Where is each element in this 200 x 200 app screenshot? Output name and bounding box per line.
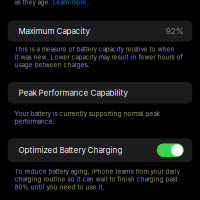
staticText: To reduce battery aging, iPhone learns f…: [14, 168, 179, 175]
staticText: Peak Performance Capability: [18, 88, 127, 98]
staticText: Maximum Capacity: [18, 26, 89, 36]
staticText: charging routine so it can wait to finis…: [14, 176, 177, 183]
staticText: 92%: [166, 26, 184, 36]
staticText: as they age.: [14, 0, 52, 6]
button[interactable]: Peak Performance Capability: [8, 82, 192, 104]
button[interactable]: Optimized Battery Charging: [8, 138, 192, 162]
staticText: performance.: [14, 118, 54, 125]
staticText: Your battery is currently supporting nor…: [14, 110, 159, 117]
staticText: Optimized Battery Charging: [18, 145, 122, 155]
button[interactable]: Maximum Capacity: [8, 20, 192, 42]
button[interactable]: Learn more...: [52, 0, 92, 6]
staticText: Learn more...: [52, 0, 92, 6]
staticText: 80% until you need to use it.: [14, 183, 104, 191]
staticText: This is a measure of battery capacity re…: [14, 46, 174, 53]
staticText: it was new. Lower capacity may result in…: [14, 53, 182, 61]
staticText: usage between charges.: [14, 61, 89, 69]
